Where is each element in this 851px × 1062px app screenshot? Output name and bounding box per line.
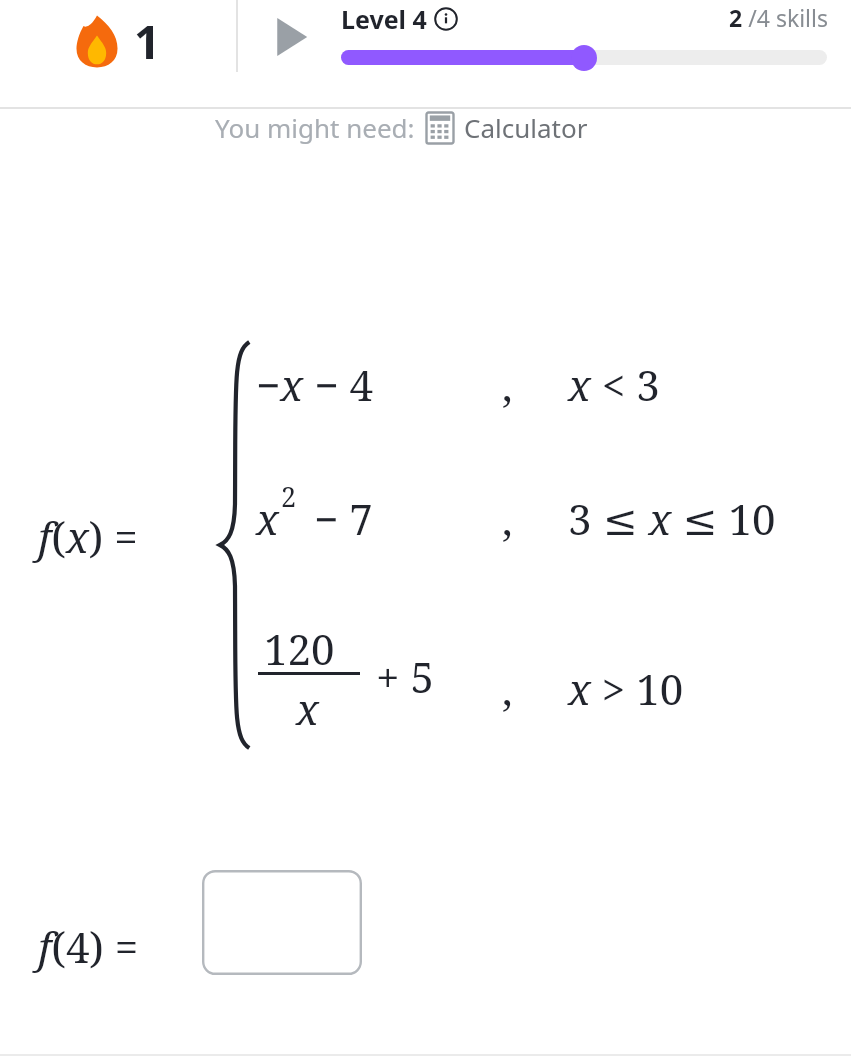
staticText: 2 /4 skills [600, 2, 828, 33]
staticText: − 7 [314, 490, 373, 547]
button[interactable]: Calculator [425, 110, 588, 145]
button[interactable]: Answer input [202, 870, 362, 975]
staticText: f(x) = [38, 508, 138, 565]
staticText: −x − 4 [256, 356, 373, 413]
staticText: You might need: [215, 110, 415, 145]
button[interactable]: Streak 1 day [70, 10, 180, 72]
staticText: 1 [134, 10, 161, 72]
staticText: x > 10 [568, 660, 684, 717]
staticText: 3 ≤ x ≤ 10 [568, 490, 776, 547]
staticText: + 5 [376, 648, 434, 705]
staticText: Calculator [464, 110, 588, 145]
staticText: 2 [281, 478, 297, 515]
staticText: 120 [264, 620, 335, 677]
button[interactable]: Play video [272, 12, 316, 62]
staticText: x [296, 680, 319, 737]
staticText: x [256, 490, 279, 547]
staticText: , [502, 490, 513, 547]
staticText: Level 4 [341, 2, 427, 36]
staticText: f(4) = [38, 918, 139, 975]
staticText: , [502, 356, 513, 413]
button[interactable]: Level information [434, 7, 458, 31]
staticText: , [502, 660, 513, 717]
staticText: x < 3 [568, 356, 660, 413]
